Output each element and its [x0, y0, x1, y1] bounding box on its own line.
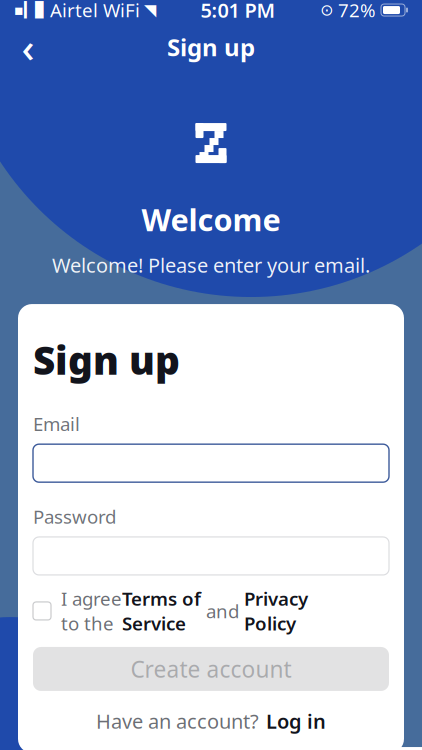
staticText: 5:01 PM	[200, 0, 275, 23]
staticText: Sign up	[167, 31, 255, 63]
staticText: Password	[33, 504, 116, 529]
staticText: Welcome! Please enter your email.	[52, 252, 370, 278]
staticText: 72%	[338, 0, 376, 22]
button[interactable]: Back	[6, 25, 50, 69]
staticText: ‹	[21, 20, 34, 74]
staticText: ⊙	[320, 1, 333, 19]
staticText: Airtel WiFi	[50, 0, 140, 22]
staticText: Privacy Policy	[244, 586, 308, 636]
button[interactable]: I agree to the	[33, 599, 389, 623]
button[interactable]: Have an account?	[33, 709, 389, 733]
staticText: I agree to the	[61, 586, 122, 636]
staticText: Welcome	[141, 199, 280, 240]
staticText: Create account	[130, 654, 291, 684]
staticText: ▪▎▊	[14, 2, 46, 18]
staticText: Sign up	[33, 334, 180, 385]
staticText: Have an account?	[96, 708, 259, 734]
staticText: Terms of Service	[122, 586, 201, 636]
staticText: ◥	[144, 1, 156, 19]
button[interactable]: Create account	[33, 647, 389, 691]
staticText: and	[201, 599, 244, 623]
staticText: Log in	[266, 708, 326, 734]
staticText: Email	[33, 411, 80, 436]
